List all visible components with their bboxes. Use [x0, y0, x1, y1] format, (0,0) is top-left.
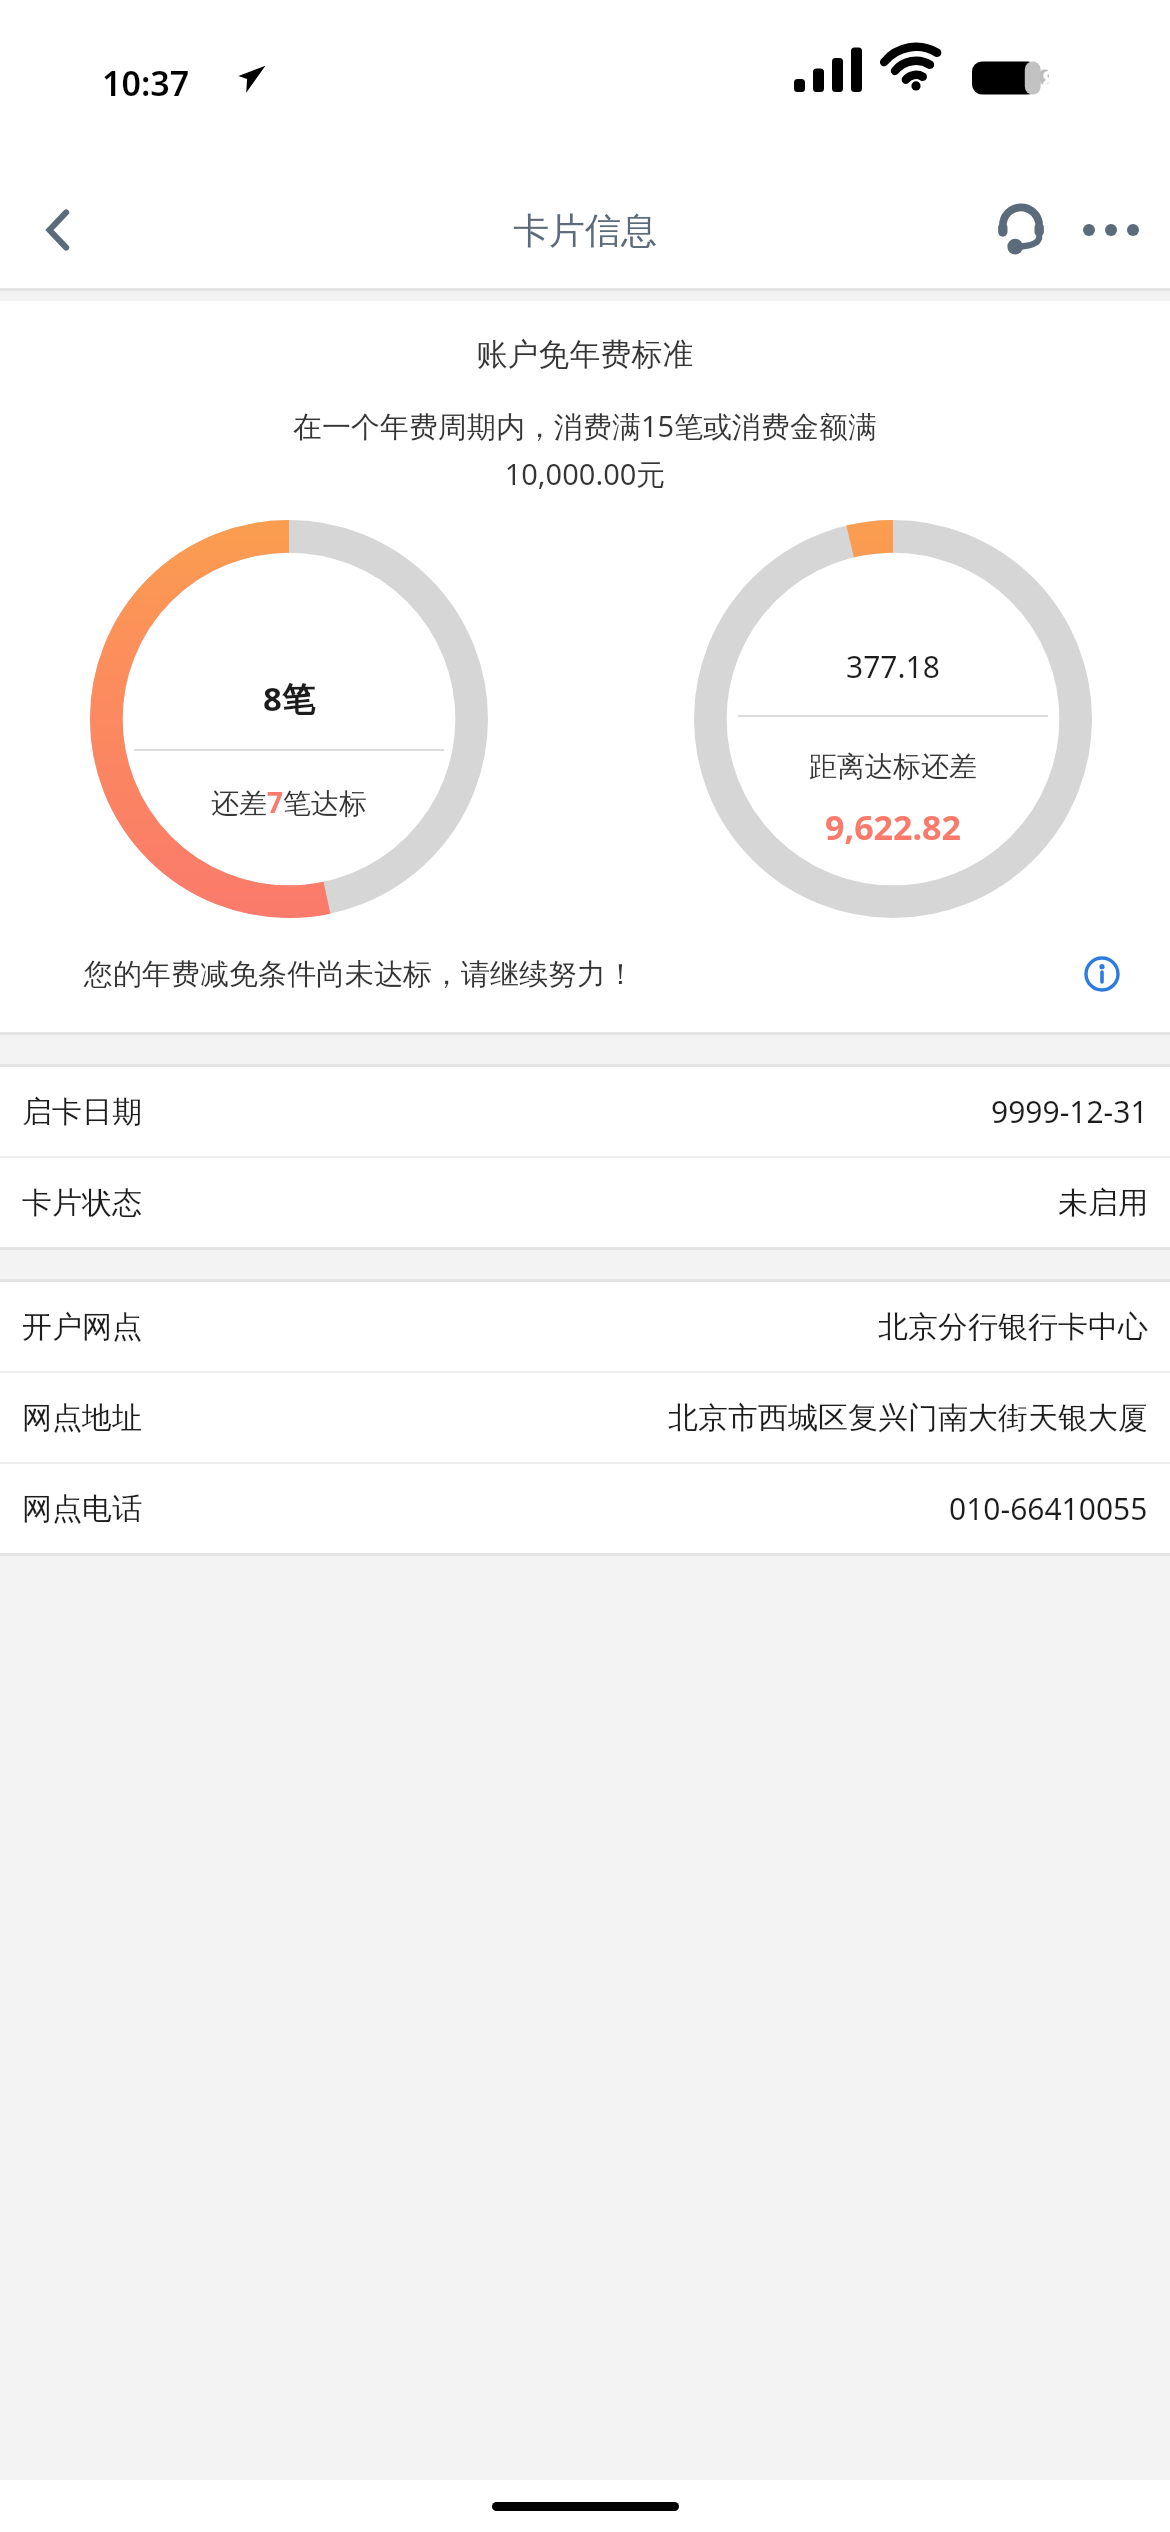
staticText: 您的年费减免条件尚未达标，请继续努力！ — [84, 956, 1074, 993]
staticText: 未启用 — [1058, 1184, 1148, 1222]
staticText: 开户网点 — [22, 1308, 142, 1346]
staticText: 9999-12-31 — [991, 1091, 1148, 1132]
button[interactable]: 启卡日期 — [0, 1067, 1170, 1156]
staticText: 在一个年费周期内，消费满15笔或消费金额满 10,000.00元 — [36, 406, 1134, 494]
button[interactable]: 网点地址 — [0, 1373, 1170, 1462]
staticText: 010-66410055 — [949, 1488, 1148, 1529]
button[interactable]: 更多 — [1066, 185, 1156, 275]
button[interactable]: 说明 — [1074, 946, 1130, 1002]
staticText: 377.18 — [846, 646, 940, 687]
staticText: 8笔 — [263, 676, 315, 721]
button[interactable]: 开户网点 — [0, 1282, 1170, 1371]
staticText: 启卡日期 — [22, 1093, 142, 1131]
button[interactable]: 卡片状态 — [0, 1158, 1170, 1247]
staticText: 83 — [1042, 62, 1072, 97]
staticText: 账户免年费标准 — [0, 335, 1170, 374]
staticText: 卡片状态 — [22, 1184, 142, 1222]
staticText: 北京市西城区复兴门南大街天银大厦 — [668, 1399, 1148, 1437]
staticText: 10:37 — [102, 60, 190, 106]
staticText: 网点电话 — [22, 1490, 142, 1528]
staticText: 还差7笔达标 — [211, 783, 368, 821]
staticText: 网点地址 — [22, 1399, 142, 1437]
button[interactable]: 网点电话 — [0, 1464, 1170, 1553]
button[interactable]: 客服 — [976, 185, 1066, 275]
staticText: 9,622.82 — [825, 804, 961, 850]
staticText: 卡片信息 — [513, 208, 657, 253]
staticText: 距离达标还差 — [809, 749, 977, 784]
staticText: 北京分行银行卡中心 — [878, 1308, 1148, 1346]
button[interactable]: 返回 — [14, 184, 106, 276]
